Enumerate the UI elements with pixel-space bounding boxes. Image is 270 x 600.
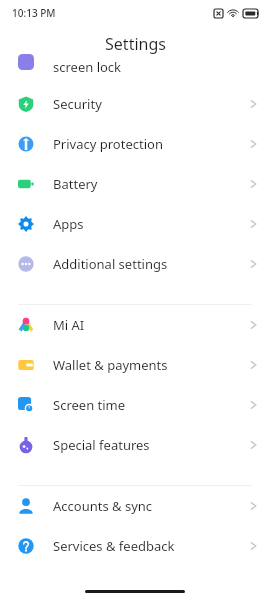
button[interactable]: Privacy protection	[0, 124, 270, 164]
staticText: 10:13 PM	[12, 6, 56, 20]
button[interactable]: Mi AI	[0, 305, 270, 345]
button[interactable]: Battery	[0, 164, 270, 204]
staticText: Apps	[53, 215, 250, 233]
staticText: Special features	[53, 436, 250, 454]
staticText: Mi AI	[53, 316, 250, 334]
staticText: Screen time	[53, 396, 250, 414]
button[interactable]: Screen time	[0, 385, 270, 425]
button[interactable]: Security	[0, 84, 270, 124]
staticText: Services & feedback	[53, 537, 250, 555]
button[interactable]: Accounts & sync	[0, 486, 270, 526]
staticText: Battery	[53, 175, 250, 193]
staticText: Security	[53, 95, 250, 113]
button[interactable]: Apps	[0, 204, 270, 244]
button[interactable]: Special features	[0, 425, 270, 465]
staticText: Accounts & sync	[53, 497, 250, 515]
button[interactable]: Wallet & payments	[0, 345, 270, 385]
button[interactable]: Additional settings	[0, 244, 270, 284]
staticText: Wallet & payments	[53, 356, 250, 374]
button[interactable]: Services & feedback	[0, 526, 270, 566]
staticText: Additional settings	[53, 255, 250, 273]
staticText: Privacy protection	[53, 135, 250, 153]
staticText: Settings	[105, 33, 166, 55]
staticText: screen lock	[53, 58, 122, 76]
button[interactable]: screen lock	[0, 62, 270, 84]
